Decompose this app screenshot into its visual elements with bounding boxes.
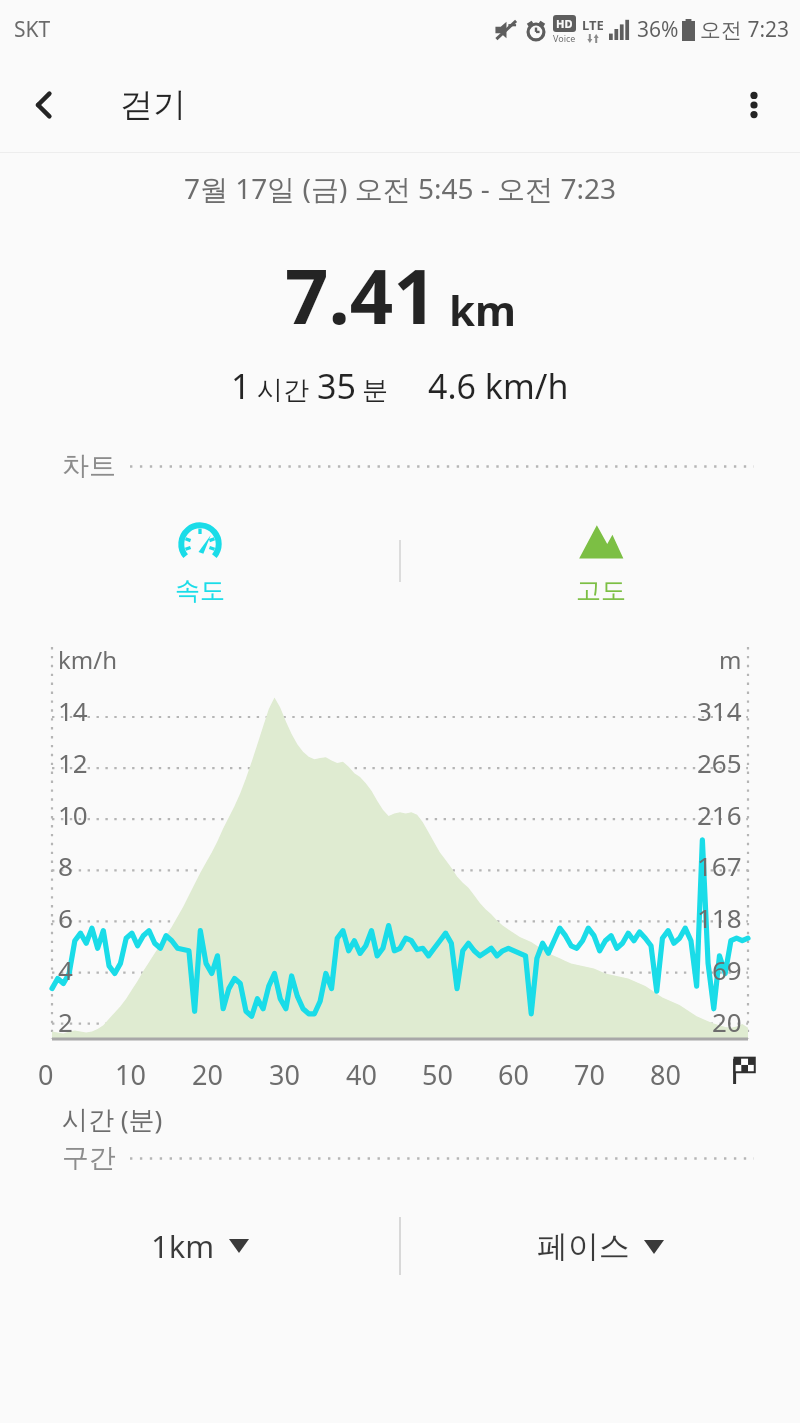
staticText: 0 — [38, 1056, 54, 1093]
staticText: 40 — [346, 1056, 377, 1093]
staticText: 60 — [498, 1056, 529, 1093]
staticText: m — [719, 643, 742, 676]
staticText: 80 — [650, 1056, 681, 1093]
staticText: 69 — [712, 952, 742, 987]
staticText: 35 — [317, 363, 356, 409]
staticText: 8 — [58, 848, 73, 883]
staticText: 314 — [697, 693, 742, 728]
staticText: 10 — [58, 797, 88, 832]
staticText: 20 — [712, 1004, 742, 1039]
staticText: 6 — [58, 900, 73, 935]
staticText: 14 — [58, 693, 88, 728]
staticText: 1km — [151, 1225, 215, 1267]
button[interactable]: 1km — [0, 1201, 399, 1291]
staticText: 216 — [697, 797, 742, 832]
staticText: 오전 7:23 — [700, 15, 790, 44]
staticText: Voice — [553, 32, 576, 44]
staticText: LTE — [582, 16, 604, 34]
staticText: 4 — [58, 952, 73, 987]
staticText: 265 — [697, 745, 742, 780]
staticText: 구간 — [62, 1141, 116, 1175]
staticText: km — [449, 281, 516, 338]
staticText: 1 — [231, 363, 251, 409]
staticText: 걷기 — [120, 84, 186, 126]
button[interactable]: More options — [718, 69, 790, 141]
staticText: 118 — [697, 900, 742, 935]
staticText: HD — [556, 16, 573, 31]
staticText: 7월 17일 (금) 오전 5:45 - 오전 7:23 — [184, 169, 616, 207]
staticText: 12 — [58, 745, 88, 780]
staticText: 20 — [192, 1056, 223, 1093]
staticText: 차트 — [62, 449, 116, 483]
staticText: 70 — [574, 1056, 605, 1093]
staticText: 고도 — [576, 575, 626, 606]
staticText: 페이스 — [537, 1227, 630, 1266]
staticText: SKT — [14, 15, 51, 44]
button[interactable]: 고도 — [401, 501, 800, 621]
staticText: 36% — [637, 15, 679, 44]
button[interactable]: 페이스 — [401, 1201, 800, 1291]
staticText: 2 — [58, 1004, 73, 1039]
staticText: 7.41 — [285, 243, 437, 347]
button[interactable]: Back — [8, 69, 80, 141]
staticText: 분 — [362, 374, 388, 407]
staticText: 시간 — [257, 374, 309, 407]
staticText: 속도 — [175, 575, 225, 606]
staticText: 167 — [697, 848, 742, 883]
staticText: 시간 (분) — [62, 1101, 163, 1137]
staticText: 30 — [269, 1056, 300, 1093]
staticText: 10 — [115, 1056, 146, 1093]
button[interactable]: 속도 — [0, 501, 399, 621]
staticText: km/h — [58, 643, 118, 676]
staticText: 50 — [422, 1056, 453, 1093]
staticText: 4.6 km/h — [428, 363, 569, 409]
